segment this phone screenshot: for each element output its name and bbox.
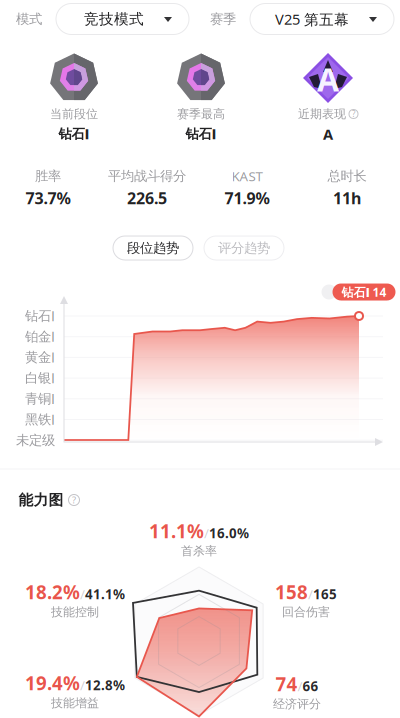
- staticText: 能力图: [18, 491, 63, 509]
- staticText: 11h: [333, 187, 361, 209]
- staticText: A: [323, 124, 333, 144]
- staticText: 当前段位: [50, 107, 98, 121]
- staticText: 胜率: [35, 168, 61, 184]
- staticText: 19.4%: [25, 671, 80, 695]
- staticText: 16.0%: [209, 524, 249, 542]
- staticText: KAST: [231, 167, 262, 185]
- staticText: 段位趋势: [127, 240, 179, 256]
- staticText: 钻石Ⅰ: [185, 126, 216, 142]
- staticText: 赛季最高: [177, 107, 225, 121]
- staticText: ?: [72, 494, 76, 506]
- staticText: 钻石Ⅰ: [25, 308, 55, 324]
- button[interactable]: 评分趋势: [204, 236, 284, 260]
- staticText: 18.2%: [25, 580, 80, 604]
- staticText: 总时长: [327, 168, 366, 184]
- staticText: 近期表现: [298, 107, 346, 121]
- staticText: 158: [275, 580, 308, 604]
- staticText: 竞技模式: [84, 10, 144, 28]
- staticText: A: [317, 58, 339, 100]
- staticText: 技能增益: [51, 696, 99, 710]
- staticText: 首杀率: [181, 544, 217, 558]
- staticText: 12.8%: [85, 676, 125, 694]
- staticText: 白银Ⅰ: [25, 370, 55, 386]
- button[interactable]: 竞技模式: [56, 3, 189, 34]
- staticText: /: [297, 677, 302, 695]
- staticText: 平均战斗得分: [108, 168, 186, 184]
- staticText: 226.5: [127, 187, 167, 209]
- staticText: 钻石Ⅰ: [58, 126, 89, 142]
- staticText: /: [80, 585, 85, 603]
- staticText: 11.1%: [149, 519, 204, 543]
- staticText: 铂金Ⅰ: [25, 328, 55, 345]
- staticText: 技能控制: [51, 605, 99, 619]
- staticText: 41.1%: [85, 585, 125, 603]
- button[interactable]: 段位趋势: [113, 236, 193, 260]
- staticText: 73.7%: [25, 187, 70, 209]
- staticText: 钻石Ⅰ 14: [341, 284, 386, 300]
- staticText: ?: [352, 109, 355, 119]
- staticText: 未定级: [16, 432, 55, 448]
- staticText: 青铜Ⅰ: [25, 391, 55, 407]
- staticText: 黑铁Ⅰ: [25, 411, 55, 428]
- staticText: /: [80, 676, 85, 694]
- staticText: /: [204, 524, 209, 542]
- staticText: 74: [275, 672, 297, 696]
- staticText: 赛季: [210, 11, 236, 27]
- staticText: 经济评分: [273, 697, 321, 711]
- button[interactable]: V25 第五幕: [250, 3, 394, 34]
- staticText: 评分趋势: [218, 240, 270, 256]
- staticText: /: [308, 585, 313, 603]
- staticText: 165: [313, 585, 337, 603]
- staticText: 模式: [16, 11, 42, 27]
- staticText: 回合伤害: [282, 605, 330, 619]
- staticText: V25 第五幕: [275, 9, 349, 29]
- staticText: 黄金Ⅰ: [25, 349, 55, 366]
- staticText: 66: [302, 677, 318, 695]
- staticText: 71.9%: [224, 187, 269, 209]
